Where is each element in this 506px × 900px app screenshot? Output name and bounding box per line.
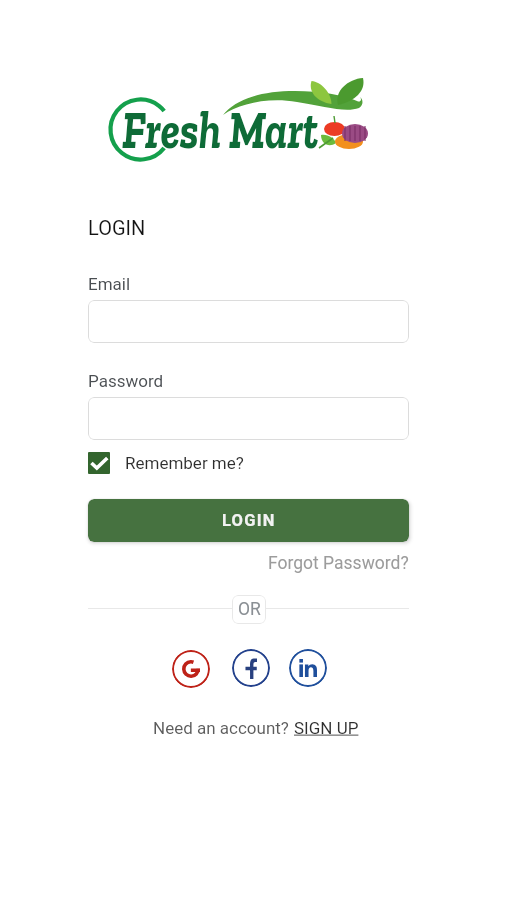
button[interactable]: Sign in with LinkedIn (289, 649, 327, 687)
button[interactable]: Remember me? (88, 450, 244, 476)
staticText: LOGIN (222, 511, 276, 530)
button[interactable]: LOGIN (88, 499, 409, 542)
button[interactable]: Sign in with Facebook (232, 649, 270, 687)
staticText: Remember me? (125, 453, 244, 473)
staticText: Email (88, 274, 131, 294)
button[interactable] (88, 397, 409, 440)
button[interactable]: Forgot Password? (268, 553, 409, 574)
button[interactable]: SIGN UP (294, 718, 359, 738)
staticText: Need an account? (153, 718, 294, 738)
staticText: Fresh Mart (122, 98, 319, 162)
staticText: Password (88, 371, 164, 391)
staticText: OR (238, 599, 261, 620)
staticText: LOGIN (88, 216, 146, 239)
button[interactable]: Sign in with Google (172, 650, 210, 688)
button[interactable] (88, 300, 409, 343)
